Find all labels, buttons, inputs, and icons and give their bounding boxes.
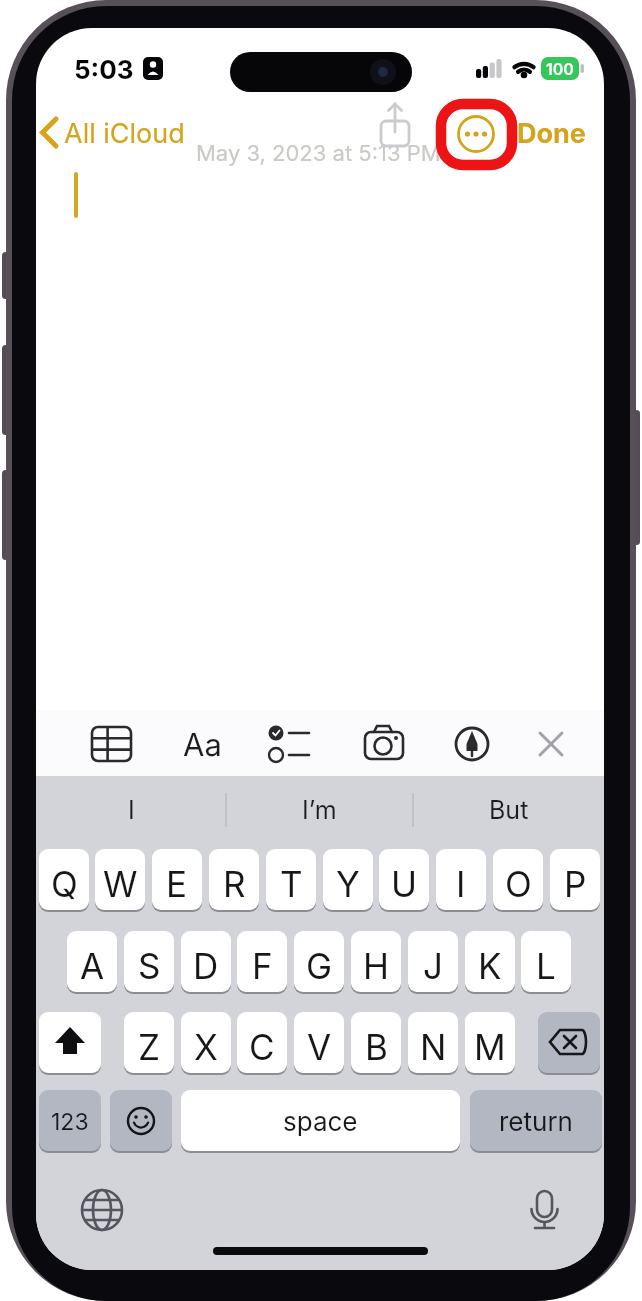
button[interactable]: A <box>67 931 117 992</box>
button[interactable]: J <box>408 931 458 992</box>
button[interactable] <box>89 722 133 766</box>
button[interactable]: R <box>209 849 259 910</box>
staticText: Y <box>336 863 360 905</box>
button[interactable]: V <box>294 1012 344 1073</box>
button[interactable] <box>441 104 512 165</box>
staticText: I <box>128 795 135 825</box>
button[interactable]: Done <box>517 117 586 150</box>
button[interactable]: space <box>181 1090 460 1151</box>
button[interactable]: Q <box>39 849 89 910</box>
button[interactable]: W <box>95 849 145 910</box>
staticText: G <box>306 945 333 987</box>
button[interactable]: P <box>550 849 600 910</box>
staticText: C <box>249 1026 275 1068</box>
button[interactable]: Y <box>323 849 373 910</box>
button[interactable]: T <box>266 849 316 910</box>
staticText: X <box>194 1026 218 1068</box>
button[interactable] <box>450 722 494 766</box>
button[interactable]: U <box>379 849 429 910</box>
button[interactable]: X <box>181 1012 231 1073</box>
staticText: B <box>365 1026 388 1068</box>
button[interactable]: But <box>413 784 604 836</box>
staticText: W <box>103 863 138 905</box>
button[interactable] <box>362 722 406 766</box>
staticText: P <box>564 863 587 905</box>
staticText: But <box>489 795 529 825</box>
staticText: Aa <box>183 726 222 764</box>
button[interactable]: G <box>294 931 344 992</box>
staticText: V <box>307 1026 332 1068</box>
staticText: All iCloud <box>64 117 185 150</box>
staticText: Z <box>138 1026 161 1068</box>
button[interactable]: E <box>152 849 202 910</box>
button[interactable]: C <box>237 1012 287 1073</box>
staticText: T <box>280 863 303 905</box>
button[interactable] <box>39 1012 101 1073</box>
staticText: I’m <box>302 795 337 825</box>
staticText: R <box>223 863 246 905</box>
button[interactable]: All iCloud <box>64 117 185 150</box>
staticText: 100 <box>546 59 574 78</box>
button[interactable] <box>379 102 413 150</box>
button[interactable]: I <box>36 784 226 836</box>
button[interactable] <box>538 1012 600 1073</box>
button[interactable]: I <box>436 849 486 910</box>
button[interactable]: D <box>181 931 231 992</box>
button[interactable]: N <box>408 1012 458 1073</box>
staticText: space <box>283 1106 358 1137</box>
button[interactable]: K <box>465 931 515 992</box>
button[interactable]: return <box>470 1090 602 1151</box>
button[interactable] <box>529 722 573 766</box>
staticText: H <box>363 945 390 987</box>
button[interactable]: Z <box>124 1012 174 1073</box>
button[interactable] <box>268 722 312 766</box>
button[interactable]: F <box>237 931 287 992</box>
staticText: U <box>391 863 418 905</box>
staticText: J <box>423 945 443 987</box>
button[interactable]: Aa <box>183 726 222 764</box>
button[interactable] <box>522 1188 566 1232</box>
button[interactable]: I’m <box>226 784 413 836</box>
staticText: May 3, 2023 at 5:13 PM <box>196 140 441 167</box>
staticText: F <box>252 945 273 987</box>
button[interactable]: 123 <box>39 1090 101 1151</box>
staticText: A <box>80 945 105 987</box>
button[interactable]: L <box>521 931 571 992</box>
staticText: S <box>138 945 161 987</box>
button[interactable]: M <box>465 1012 515 1073</box>
staticText: D <box>193 945 219 987</box>
staticText: L <box>536 945 556 987</box>
button[interactable]: O <box>493 849 543 910</box>
staticText: N <box>420 1026 447 1068</box>
staticText: return <box>499 1106 573 1137</box>
button[interactable] <box>80 1188 124 1232</box>
staticText: M <box>474 1026 506 1068</box>
button[interactable] <box>110 1090 172 1151</box>
button[interactable]: B <box>351 1012 401 1073</box>
staticText: Done <box>517 117 586 150</box>
staticText: O <box>505 863 532 905</box>
staticText: 5:03 <box>74 54 134 85</box>
button[interactable]: S <box>124 931 174 992</box>
button[interactable]: H <box>351 931 401 992</box>
staticText: Q <box>51 863 78 905</box>
staticText: 123 <box>51 1108 89 1136</box>
staticText: K <box>478 945 502 987</box>
staticText: E <box>166 863 188 905</box>
staticText: I <box>456 863 466 905</box>
